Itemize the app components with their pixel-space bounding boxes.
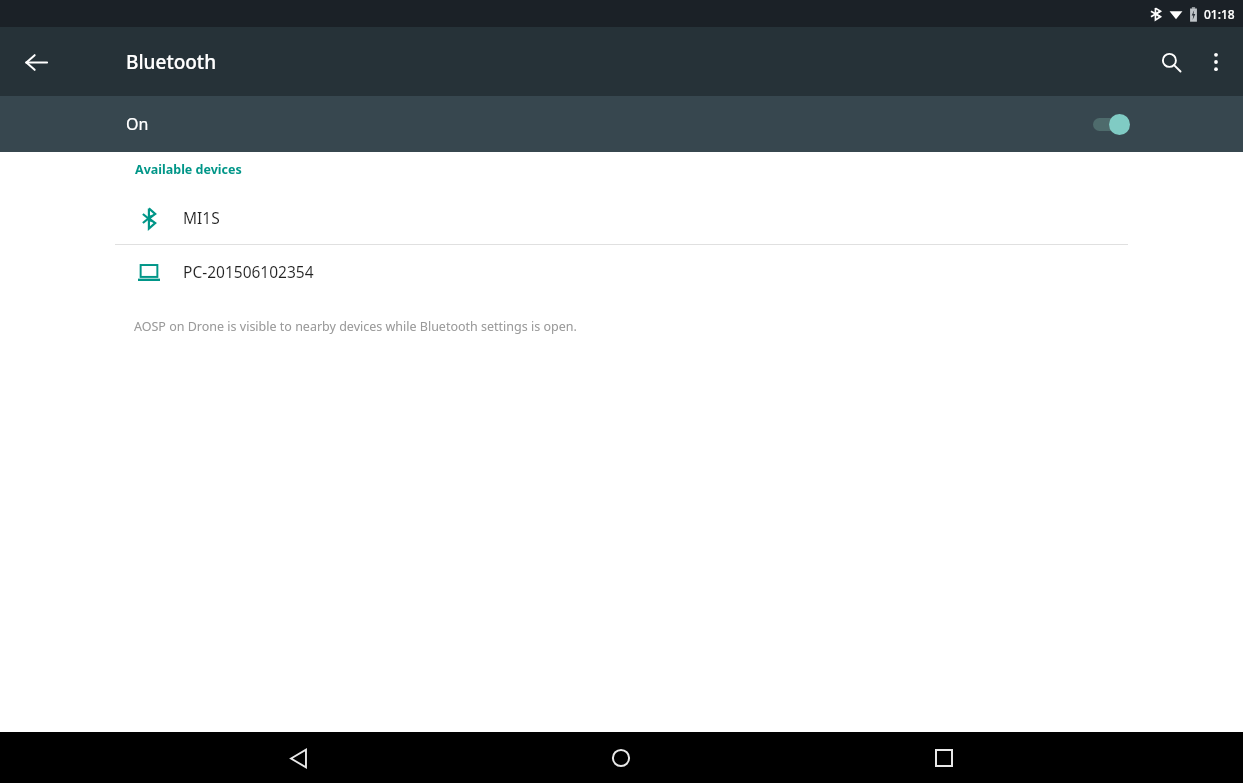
staticText: MI1S [183, 207, 220, 228]
staticText: 01:18 [1204, 6, 1235, 22]
staticText: Bluetooth [126, 49, 217, 75]
button[interactable]: Back [274, 734, 322, 782]
button[interactable]: On [0, 96, 1243, 152]
button[interactable]: Recent apps [920, 734, 968, 782]
button[interactable]: Back [12, 38, 60, 86]
staticText: On [126, 113, 149, 135]
button[interactable]: MI1S [0, 191, 1243, 244]
button[interactable]: Search [1147, 38, 1195, 86]
staticText: PC-201506102354 [183, 261, 314, 282]
button[interactable]: PC-201506102354 [0, 245, 1243, 298]
button[interactable]: More options [1195, 41, 1237, 83]
button[interactable]: Home [597, 734, 645, 782]
staticText: AOSP on Drone is visible to nearby devic… [134, 318, 577, 335]
button[interactable]: Bluetooth toggle [1090, 111, 1130, 137]
staticText: Available devices [135, 161, 242, 178]
